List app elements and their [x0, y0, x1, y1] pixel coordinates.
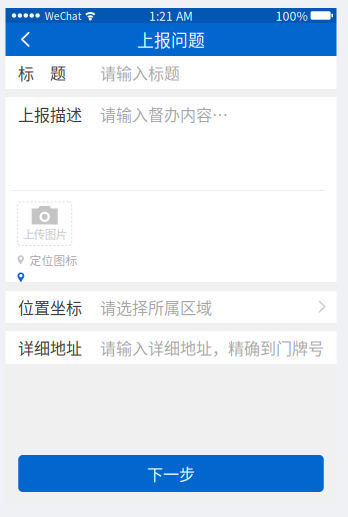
staticText: 请输入标题	[100, 61, 180, 84]
button[interactable]: 位置坐标	[5, 291, 336, 323]
button[interactable]: 下一步	[18, 455, 324, 492]
staticText: WeChat	[45, 8, 82, 23]
staticText: 请输入督办内容…	[100, 102, 228, 126]
staticText: 请选择所属区域	[100, 295, 212, 319]
button[interactable]: 返回	[5, 23, 45, 56]
staticText: 详细地址	[18, 336, 82, 359]
staticText: 上报问题	[137, 27, 205, 51]
staticText: 100%	[276, 7, 308, 24]
staticText: 上报描述	[18, 102, 82, 126]
staticText: 位置坐标	[18, 295, 82, 319]
staticText: 1:21 AM	[149, 7, 193, 24]
staticText: 上传图片	[23, 225, 67, 242]
staticText: 下一步	[147, 462, 195, 485]
staticText: 定位图标	[29, 251, 77, 268]
button[interactable]: 上传图片	[17, 201, 72, 246]
staticText: 请输入详细地址，精确到门牌号	[100, 336, 324, 359]
staticText: 标 题	[18, 61, 66, 84]
